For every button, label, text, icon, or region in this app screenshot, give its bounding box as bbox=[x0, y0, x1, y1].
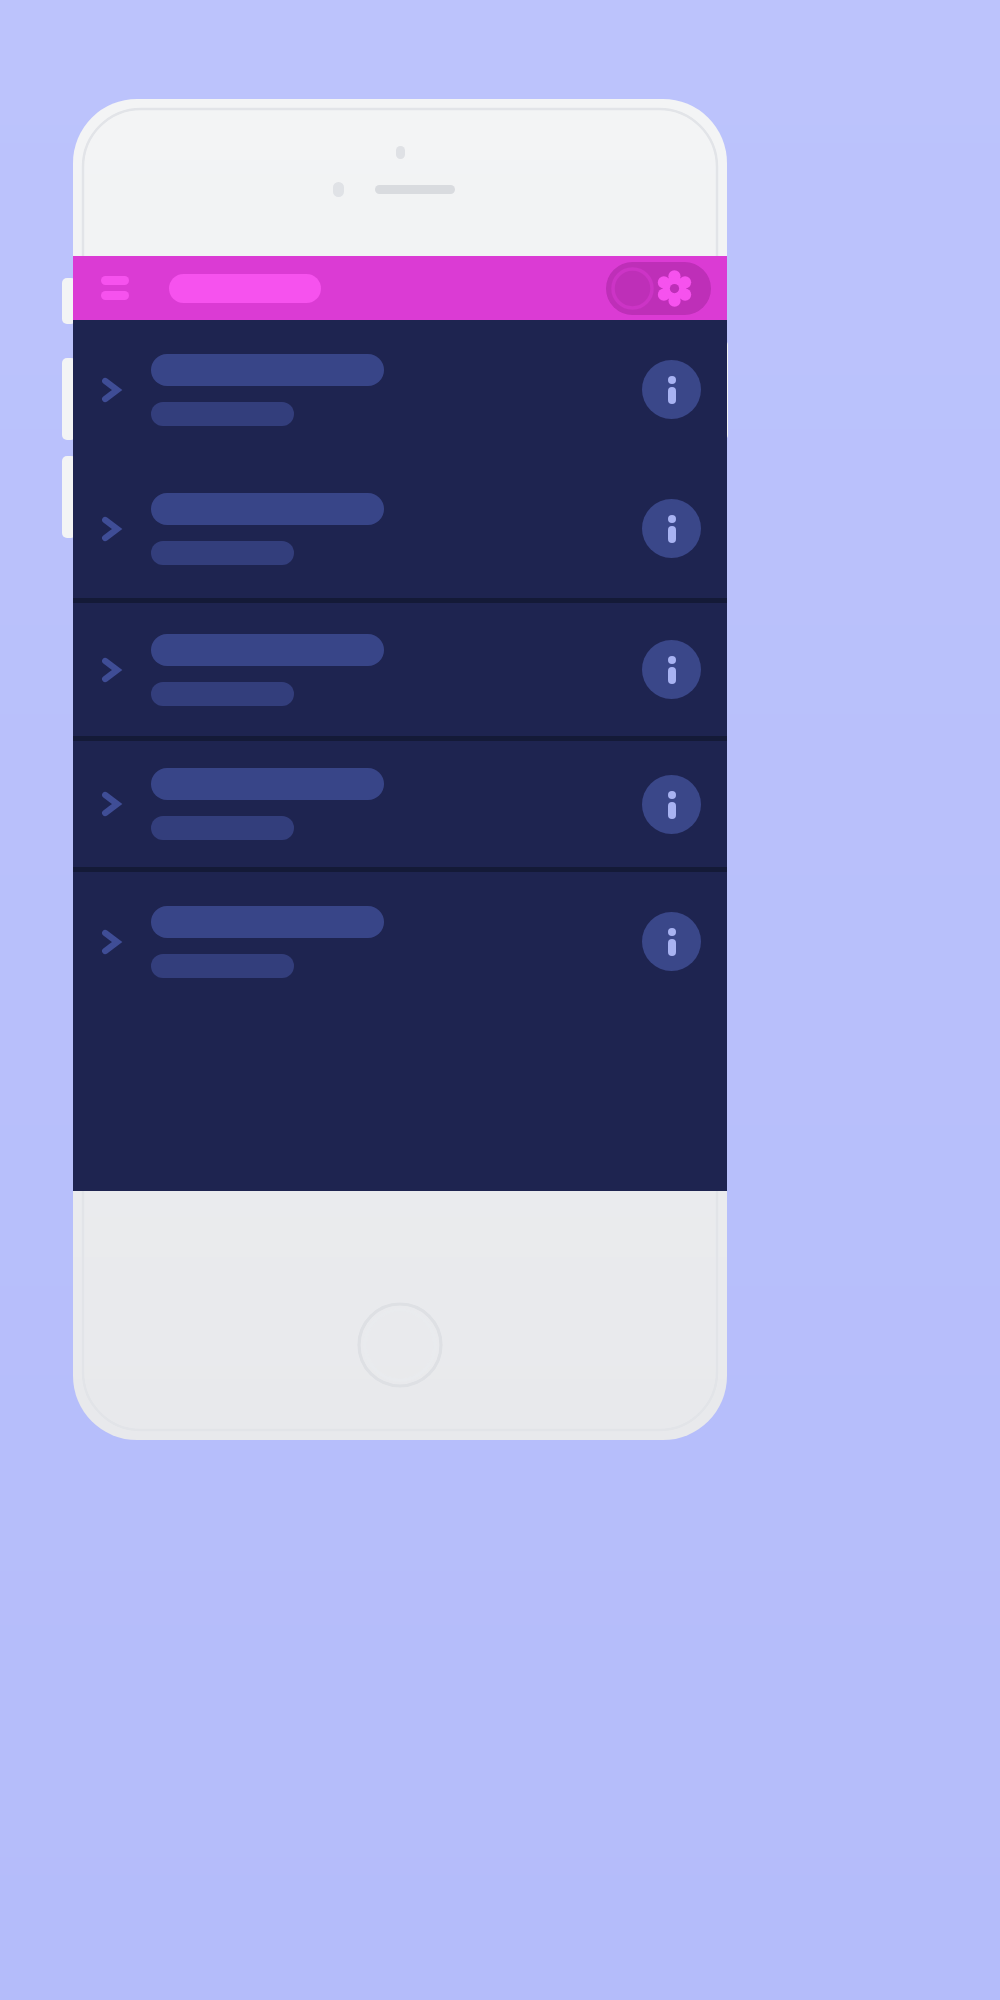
button[interactable]: More information bbox=[642, 499, 701, 558]
button[interactable]: More information bbox=[642, 912, 701, 971]
button[interactable]: More information bbox=[73, 741, 727, 867]
button[interactable]: More information bbox=[73, 459, 727, 598]
button[interactable]: Open navigation menu bbox=[95, 268, 135, 308]
button[interactable]: More information bbox=[73, 872, 727, 1011]
button[interactable]: More information bbox=[73, 320, 727, 459]
button[interactable]: Settings bbox=[606, 262, 711, 315]
button[interactable]: More information bbox=[642, 775, 701, 834]
button[interactable]: More information bbox=[642, 360, 701, 419]
button[interactable]: Search field bbox=[169, 274, 321, 303]
button[interactable]: More information bbox=[642, 640, 701, 699]
button[interactable]: More information bbox=[73, 603, 727, 736]
